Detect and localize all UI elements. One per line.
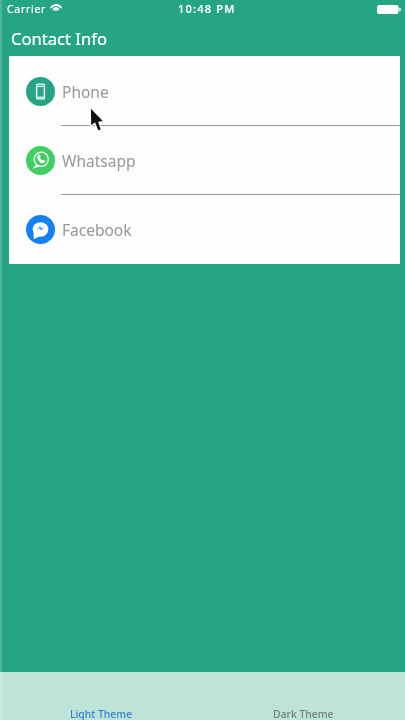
button[interactable]: Light Theme (0, 672, 202, 720)
staticText: Light Theme (70, 707, 133, 720)
staticText: Contact Info (11, 27, 107, 50)
staticText: Facebook (62, 219, 132, 240)
staticText: Carrier (7, 2, 47, 16)
other: Wifi signal (50, 2, 62, 11)
button[interactable]: Phone (9, 56, 400, 126)
staticText: Whatsapp (62, 150, 136, 171)
staticText: Phone (62, 81, 109, 102)
button[interactable]: Dark Theme (202, 672, 405, 720)
other: Battery (377, 5, 401, 14)
button[interactable]: Facebook (9, 195, 400, 264)
button[interactable]: Whatsapp (9, 126, 400, 195)
staticText: 10:48 PM (178, 1, 236, 16)
staticText: Dark Theme (273, 707, 334, 720)
